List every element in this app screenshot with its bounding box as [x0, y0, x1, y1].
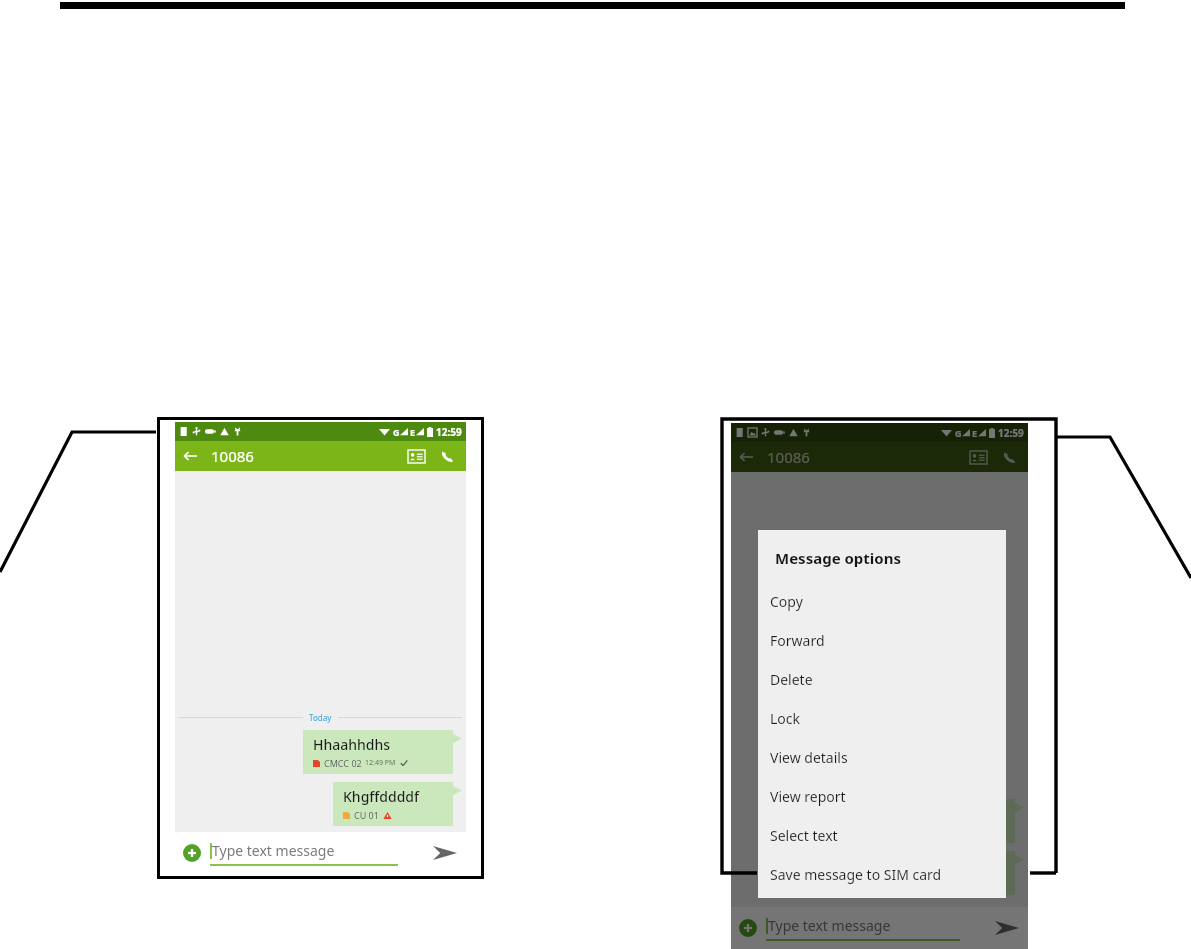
staticText: Lock — [770, 709, 801, 728]
button[interactable]: Contact details — [963, 442, 993, 472]
staticText: CMCC 02 — [324, 757, 362, 769]
button[interactable]: Select text — [758, 816, 1006, 855]
button[interactable]: View report — [758, 777, 1006, 816]
staticText: Message options — [775, 548, 901, 568]
staticText: 12:59 — [436, 425, 462, 439]
staticText: View report — [770, 787, 846, 806]
button[interactable]: Send — [992, 913, 1022, 943]
staticText: G — [955, 427, 962, 439]
button[interactable]: Type text message — [210, 841, 424, 866]
button[interactable]: Send — [430, 838, 460, 868]
button[interactable]: Save message to SIM card — [758, 855, 1006, 894]
staticText: View details — [770, 748, 848, 767]
staticText: 12:59 — [998, 426, 1024, 440]
button[interactable]: Khgffddddf — [333, 782, 462, 826]
staticText: 10086 — [767, 447, 810, 467]
staticText: E — [410, 426, 416, 438]
button[interactable]: Add attachment — [181, 842, 203, 864]
staticText: Copy — [770, 592, 803, 611]
staticText: Type text message — [212, 841, 335, 860]
button[interactable]: Call — [433, 441, 463, 471]
button[interactable]: Back — [731, 442, 761, 472]
button[interactable]: Type text message — [766, 916, 986, 941]
staticText: Khgffddddf — [905, 856, 982, 875]
staticText: Select text — [770, 826, 838, 845]
button[interactable]: Delete — [758, 660, 1006, 699]
staticText: G — [393, 426, 400, 438]
staticText: Hhaahhdhs — [313, 735, 391, 754]
button[interactable]: Hhaahhdhs — [865, 799, 1024, 843]
button[interactable]: Copy — [758, 582, 1006, 621]
staticText: Delete — [770, 670, 813, 689]
button[interactable]: Khgffddddf — [895, 851, 1024, 895]
staticText: Today — [309, 712, 332, 723]
button[interactable]: View details — [758, 738, 1006, 777]
staticText: Khgffddddf — [343, 787, 420, 806]
staticText: CU 01 — [354, 809, 379, 821]
button[interactable]: Lock — [758, 699, 1006, 738]
staticText: Save message to SIM card — [770, 865, 942, 884]
staticText: CU 01 — [916, 878, 941, 890]
button[interactable]: Back — [175, 441, 205, 471]
button[interactable]: Hhaahhdhs — [303, 730, 462, 774]
staticText: Forward — [770, 631, 825, 650]
staticText: E — [972, 427, 978, 439]
button[interactable]: Call — [995, 442, 1025, 472]
staticText: 12:49 PM — [365, 758, 396, 768]
staticText: 10086 — [211, 446, 254, 466]
button[interactable]: Add attachment — [737, 917, 759, 939]
button[interactable]: Contact details — [401, 441, 431, 471]
staticText: Type text message — [768, 916, 891, 935]
button[interactable]: Forward — [758, 621, 1006, 660]
